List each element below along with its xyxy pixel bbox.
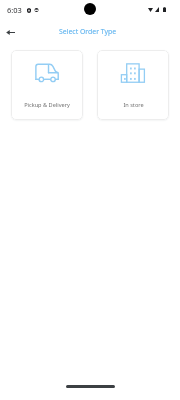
staticText: In store xyxy=(123,101,144,109)
button[interactable]: In store xyxy=(97,50,169,120)
staticText: 6:03 xyxy=(7,5,22,15)
staticText: Pickup & Delivery xyxy=(24,101,70,109)
staticText: Select Order Type xyxy=(59,27,117,36)
button[interactable]: Pickup & Delivery xyxy=(11,50,83,120)
button[interactable]: Back xyxy=(1,23,19,41)
